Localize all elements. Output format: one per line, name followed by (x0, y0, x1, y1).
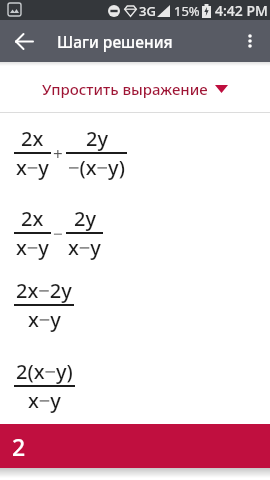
staticText: x−y (16, 234, 49, 261)
staticText: x−y (16, 154, 49, 181)
staticText: 2x (21, 125, 44, 152)
staticText: 4:42 PM (215, 1, 268, 20)
staticText: −(x−y) (68, 154, 125, 181)
staticText: x−y (28, 306, 61, 333)
staticText: 2y (74, 205, 96, 232)
button[interactable]: Упростить выражение (0, 79, 270, 99)
button[interactable] (242, 33, 258, 49)
staticText: + (53, 142, 63, 165)
staticText: 2x (21, 205, 44, 232)
button[interactable]: 2 (0, 424, 270, 468)
staticText: − (53, 222, 63, 245)
staticText: 2(x−y) (16, 358, 73, 385)
staticText: x−y (28, 387, 61, 414)
button[interactable] (14, 31, 34, 51)
staticText: 2 (12, 431, 26, 462)
staticText: 3G (139, 2, 156, 20)
staticText: Упростить выражение (42, 79, 208, 99)
staticText: 2y (86, 125, 108, 152)
staticText: 2x−2y (16, 277, 72, 304)
staticText: Шаги решения (57, 31, 173, 52)
staticText: 15% (174, 2, 200, 20)
staticText: x−y (68, 234, 101, 261)
